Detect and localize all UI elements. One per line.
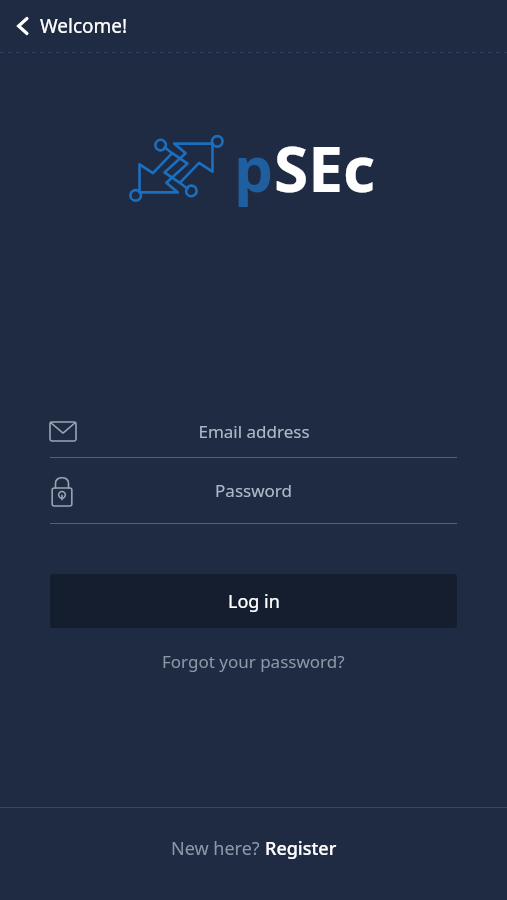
staticText: Email address xyxy=(198,420,310,443)
button[interactable]: Log in xyxy=(50,574,457,628)
staticText: Forgot your password? xyxy=(162,650,345,673)
staticText: SEc xyxy=(274,126,375,210)
other: Back xyxy=(12,15,34,37)
staticText: Welcome! xyxy=(40,13,128,39)
button[interactable]: Password xyxy=(50,458,457,523)
button[interactable]: Back xyxy=(0,0,507,52)
staticText: Log in xyxy=(228,589,280,614)
button[interactable]: Email xyxy=(50,405,457,457)
button[interactable]: Forgot your password? xyxy=(50,638,457,684)
other: Password xyxy=(50,476,74,506)
button[interactable]: New here? xyxy=(171,836,337,861)
staticText: p xyxy=(234,126,274,210)
staticText: Password xyxy=(215,479,292,502)
staticText: New here? xyxy=(171,836,265,861)
staticText: Register xyxy=(265,836,337,861)
other: Email xyxy=(50,422,76,441)
